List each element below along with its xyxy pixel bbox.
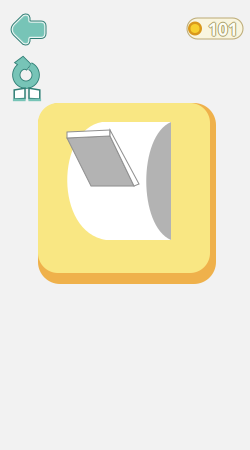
button[interactable]: Back bbox=[9, 12, 47, 46]
staticText: 101 bbox=[207, 17, 237, 40]
button[interactable]: Hint bbox=[13, 87, 41, 101]
staticText: 101 bbox=[208, 18, 238, 41]
staticText: 101 bbox=[208, 17, 238, 40]
staticText: 101 bbox=[208, 17, 238, 40]
staticText: 101 bbox=[209, 17, 239, 40]
button[interactable]: Restart bbox=[10, 55, 42, 91]
button[interactable]: Coins: 101 bbox=[187, 18, 243, 39]
